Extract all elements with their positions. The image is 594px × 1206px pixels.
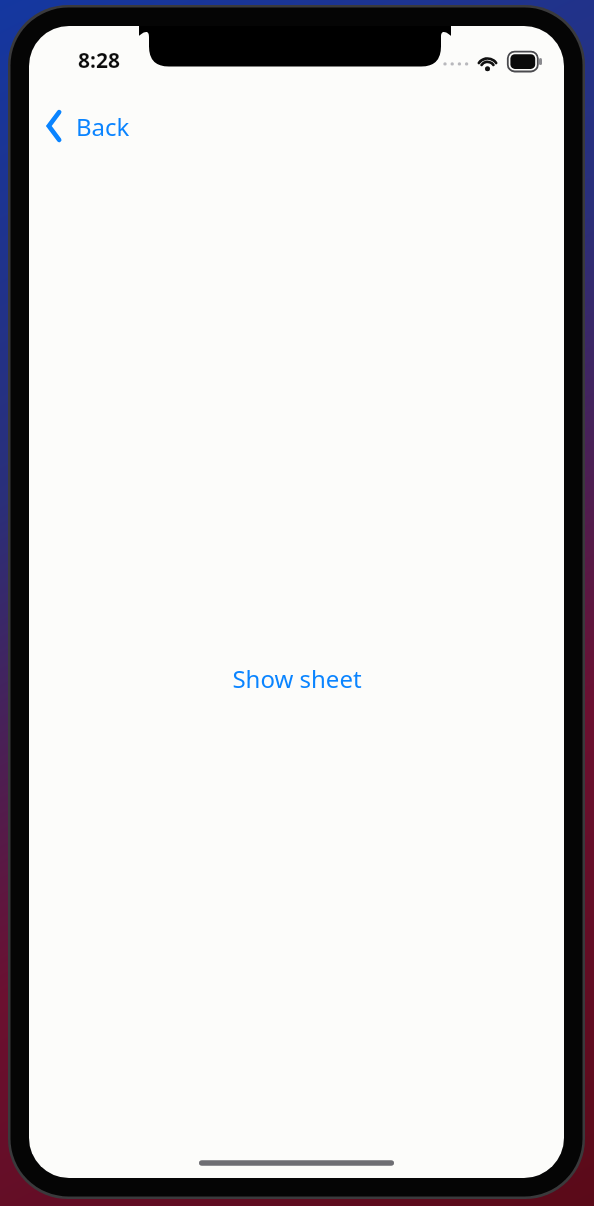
button[interactable]: Back bbox=[39, 102, 130, 150]
staticText: Show sheet bbox=[232, 662, 362, 695]
button[interactable]: Show sheet bbox=[232, 662, 362, 695]
staticText: Back bbox=[76, 110, 130, 143]
staticText: 8:28 bbox=[78, 46, 120, 75]
